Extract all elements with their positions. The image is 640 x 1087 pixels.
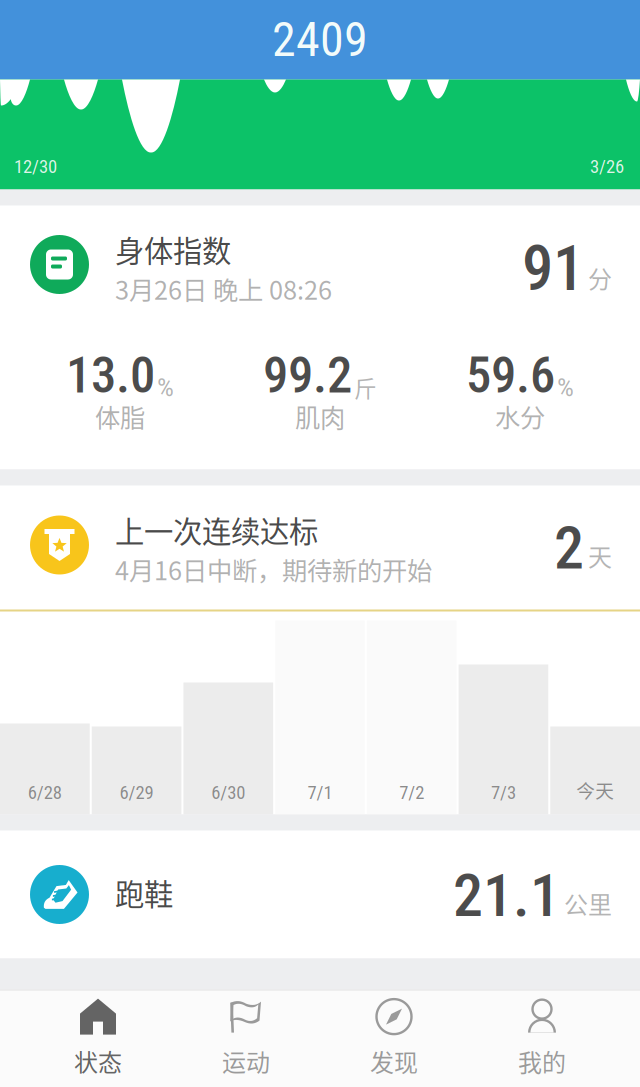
staticText: 21.1 — [453, 860, 560, 931]
staticText: 4月16日中断，期待新的开始 — [115, 551, 432, 588]
staticText: 3/26 — [590, 156, 624, 177]
staticText: 2409 — [272, 11, 368, 68]
staticText: 59.6 — [466, 345, 555, 405]
button[interactable]: 身体指数 — [0, 205, 640, 469]
staticText: 状态 — [74, 1044, 122, 1078]
staticText: 跑鞋 — [115, 871, 173, 914]
staticText: 上一次连续达标 — [115, 508, 318, 551]
button[interactable]: 跑鞋 — [0, 830, 640, 958]
button[interactable]: 发现 — [320, 990, 468, 1086]
staticText: 天 — [588, 538, 612, 573]
staticText: % — [157, 372, 174, 403]
staticText: 公里 — [564, 886, 612, 921]
button[interactable]: 我的 — [468, 990, 616, 1086]
staticText: 3月26日 晚上 08:26 — [115, 270, 332, 307]
staticText: % — [557, 372, 574, 403]
button[interactable]: 状态 — [24, 990, 172, 1086]
staticText: 体脂 — [95, 398, 145, 434]
staticText: 发现 — [370, 1044, 418, 1078]
button[interactable]: 运动 — [172, 990, 320, 1086]
staticText: 6/30 — [211, 782, 245, 803]
staticText: 91 — [522, 232, 584, 305]
staticText: 分 — [588, 260, 612, 295]
staticText: 身体指数 — [115, 228, 231, 270]
staticText: 我的 — [518, 1044, 566, 1078]
staticText: 今天 — [576, 776, 614, 803]
staticText: 水分 — [495, 398, 545, 434]
staticText: 99.2 — [263, 345, 352, 405]
staticText: 13.0 — [66, 345, 155, 405]
staticText: 2 — [554, 513, 584, 583]
staticText: 肌肉 — [295, 398, 345, 434]
staticText: 7/2 — [399, 782, 424, 803]
staticText: 运动 — [222, 1044, 270, 1078]
staticText: 斤 — [354, 371, 377, 404]
staticText: 6/28 — [28, 782, 62, 803]
button[interactable]: 上一次连续达标 — [0, 485, 640, 814]
staticText: 7/1 — [307, 782, 332, 803]
staticText: 7/3 — [491, 782, 516, 803]
staticText: 12/30 — [14, 156, 57, 177]
staticText: 6/29 — [120, 782, 154, 803]
